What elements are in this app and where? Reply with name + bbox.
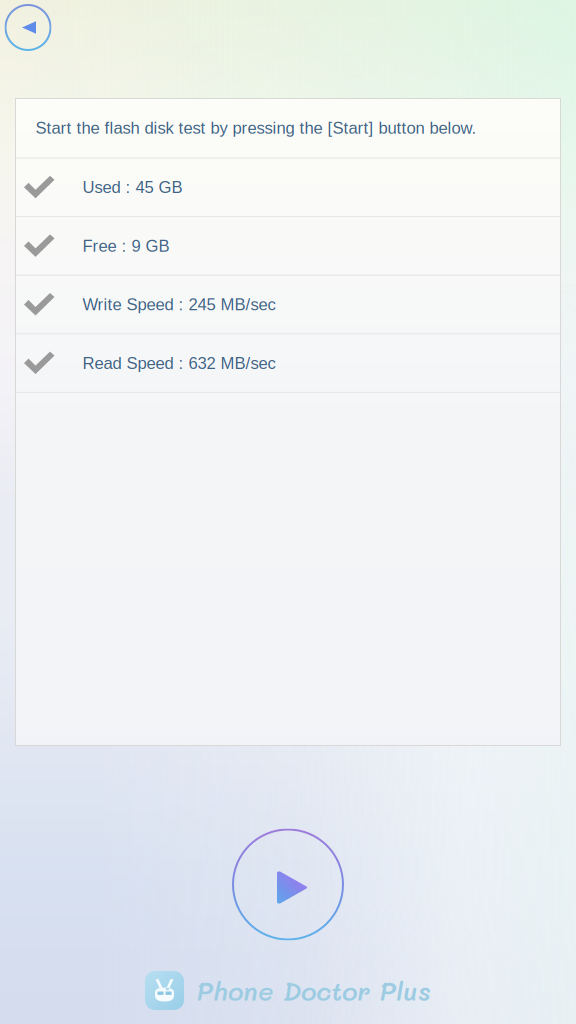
staticText: Used : 45 GB <box>82 178 182 197</box>
button[interactable]: Start test <box>228 828 348 940</box>
button[interactable]: Free : 9 GB <box>15 217 560 275</box>
button[interactable]: Used : 45 GB <box>15 158 560 216</box>
button[interactable]: Back <box>0 0 56 54</box>
staticText: Phone Doctor Plus <box>196 974 431 1007</box>
staticText: Write Speed : 245 MB/sec <box>82 295 275 314</box>
button[interactable]: Write Speed : 245 MB/sec <box>15 276 560 333</box>
staticText: Read Speed : 632 MB/sec <box>82 354 275 372</box>
button[interactable]: Read Speed : 632 MB/sec <box>15 334 560 392</box>
staticText: Free : 9 GB <box>82 237 169 255</box>
staticText: Start the flash disk test by pressing th… <box>35 119 476 137</box>
